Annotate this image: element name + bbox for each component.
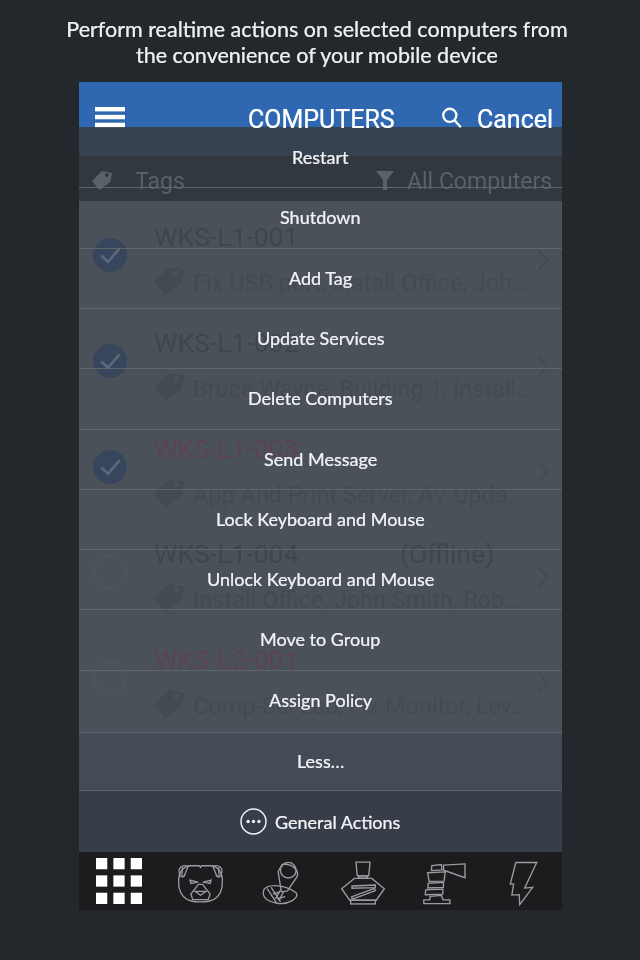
button[interactable]: WKS-L1-003 [79,414,562,519]
staticText: Assign Policy [269,689,373,711]
staticText: Send Message [264,448,378,470]
button[interactable]: Computers [160,852,241,910]
staticText: (Offline) [400,538,495,569]
button[interactable]: Delete Computers [79,368,562,428]
button[interactable]: WKS-L1-002 [79,308,562,413]
staticText: App And Print Server, AV Upda… [193,481,524,509]
staticText: Bruce Wayne, Building 1, Install… [193,375,533,403]
button[interactable]: Update Services [79,308,562,368]
staticText: All Computers [407,168,553,195]
button[interactable]: Lock Keyboard and Mouse [79,489,562,549]
button[interactable]: Power actions [484,852,562,910]
staticText: Update Services [257,327,385,349]
button[interactable]: Restart [79,127,562,187]
staticText: Cancel [477,105,554,134]
button[interactable]: Dashboard [79,852,160,910]
button[interactable]: Inventory [322,852,403,910]
button[interactable]: Assign Policy [79,670,562,730]
button[interactable]: Search [431,82,473,127]
button[interactable]: Cancel [475,82,563,127]
staticText: Delete Computers [248,387,393,409]
staticText: Install Office, John Smith, Rob… [193,586,520,614]
staticText: Restart [292,146,349,168]
button[interactable]: WKS-L1-004 [79,519,562,624]
staticText: Unlock Keyboard and Mouse [207,568,435,590]
staticText: WKS-L1-001 [154,221,299,252]
button[interactable]: WKS-L1-001 [79,202,562,307]
staticText: Add Tag [289,267,353,289]
staticText: Comp-Sci Lab, Fix Monitor, Lev… [193,692,527,720]
button[interactable]: WKS-L2-001 [79,625,562,730]
button[interactable]: Add Tag [79,248,562,308]
staticText: Less… [297,750,345,772]
button[interactable]: Tags [79,156,320,201]
staticText: WKS-L2-001 [154,644,299,675]
button[interactable]: Remote control [403,852,484,910]
button[interactable]: Open navigation menu [79,82,137,127]
staticText: Shutdown [280,206,361,228]
staticText: COMPUTERS [248,105,395,134]
button[interactable]: Send Message [79,429,562,489]
staticText: WKS-L1-003 [154,433,299,464]
staticText: Perform realtime actions on selected com… [0,16,637,68]
button[interactable]: Move to Group [79,609,562,669]
button[interactable]: Less… [79,732,562,790]
button[interactable]: Shutdown [79,187,562,247]
staticText: Lock Keyboard and Mouse [216,508,425,530]
staticText: Move to Group [260,628,381,650]
button[interactable]: Unlock Keyboard and Mouse [79,549,562,609]
staticText: WKS-L1-004 [154,538,299,569]
staticText: Fix USB port, Install Office, Joh… [193,269,528,297]
staticText: Tags [135,168,185,195]
button[interactable]: All Computers [320,156,562,201]
staticText: WKS-L1-002 [154,327,299,358]
button[interactable]: Announcements [241,852,322,910]
staticText: General Actions [275,811,401,833]
button[interactable]: General Actions [79,790,562,852]
